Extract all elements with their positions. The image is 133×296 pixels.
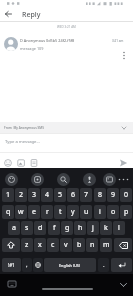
button[interactable]: y <box>67 205 79 219</box>
staticText: y <box>71 207 75 217</box>
staticText: 7 <box>84 190 89 200</box>
button[interactable] <box>33 258 43 272</box>
button[interactable] <box>103 173 116 186</box>
staticText: l <box>118 223 120 233</box>
staticText: i <box>99 207 101 217</box>
button[interactable]: 0 <box>120 188 132 202</box>
staticText: u <box>84 207 89 217</box>
button[interactable]: 7 <box>80 188 92 202</box>
staticText: c <box>51 240 55 250</box>
button[interactable]: w <box>15 205 27 219</box>
staticText: b <box>77 240 82 250</box>
button[interactable]: n <box>86 238 98 252</box>
staticText: 9 <box>111 190 116 200</box>
button[interactable] <box>111 258 132 272</box>
button[interactable] <box>2 238 20 252</box>
button[interactable]: z <box>21 238 33 252</box>
staticText: d <box>38 223 43 233</box>
button[interactable]: h <box>74 221 86 235</box>
button[interactable] <box>117 280 129 290</box>
button[interactable]: 5 <box>54 188 66 202</box>
button[interactable]: 3 <box>28 188 40 202</box>
staticText: 8 <box>98 190 103 200</box>
button[interactable] <box>2 9 14 19</box>
button[interactable]: r <box>41 205 53 219</box>
staticText: 0 <box>124 190 129 200</box>
button[interactable]: p <box>120 205 132 219</box>
button[interactable] <box>31 173 44 186</box>
staticText: z <box>25 240 29 250</box>
staticText: WED 3:21 AM <box>57 25 76 29</box>
staticText: f <box>53 223 56 233</box>
button[interactable]: f <box>48 221 60 235</box>
button[interactable]: c <box>47 238 59 252</box>
button[interactable]: k <box>100 221 112 235</box>
staticText: j <box>92 223 94 233</box>
button[interactable]: 2 <box>15 188 27 202</box>
staticText: 3:21 am <box>112 39 124 43</box>
staticText: 3 <box>32 190 37 200</box>
button[interactable]: Type a message... <box>5 139 40 145</box>
button[interactable]: b <box>73 238 85 252</box>
staticText: message 109 <box>20 46 44 51</box>
staticText: 5 <box>58 190 63 200</box>
staticText: h <box>78 223 83 233</box>
button[interactable]: s <box>21 221 33 235</box>
button[interactable]: 6 <box>67 188 79 202</box>
staticText: Reply <box>22 10 41 20</box>
button[interactable]: g <box>61 221 73 235</box>
staticText: a <box>12 223 16 233</box>
button[interactable]: 8 <box>94 188 106 202</box>
button[interactable]: !#1 <box>2 258 21 272</box>
button[interactable]: From My Anonymous SMS <box>0 122 133 133</box>
staticText: s <box>25 223 29 233</box>
staticText: v <box>64 240 68 250</box>
button[interactable]: 4 <box>41 188 53 202</box>
button[interactable]: English (US) <box>44 258 96 272</box>
staticText: 1 <box>6 190 11 200</box>
staticText: e <box>32 207 36 217</box>
button[interactable] <box>42 288 93 290</box>
staticText: o <box>111 207 116 217</box>
button[interactable] <box>57 173 70 186</box>
button[interactable] <box>6 279 18 289</box>
staticText: !#1 <box>8 262 15 268</box>
button[interactable]: e <box>28 205 40 219</box>
staticText: t <box>59 207 62 217</box>
staticText: r <box>46 207 49 217</box>
staticText: English (US) <box>59 263 81 268</box>
staticText: g <box>65 223 70 233</box>
staticText: , <box>26 261 28 269</box>
staticText: w <box>18 207 24 217</box>
button[interactable]: q <box>2 205 14 219</box>
button[interactable]: . <box>98 258 109 272</box>
button[interactable]: v <box>60 238 72 252</box>
staticText: From My Anonymous SMS <box>4 126 44 130</box>
staticText: 4 <box>45 190 50 200</box>
staticText: 2 <box>19 190 24 200</box>
button[interactable] <box>83 173 96 186</box>
button[interactable]: 9 <box>107 188 119 202</box>
staticText: 6 <box>71 190 76 200</box>
button[interactable]: u <box>80 205 92 219</box>
button[interactable] <box>5 173 18 186</box>
staticText: D Anonymous 0d5b5 24f2-f5f8 <box>20 38 75 43</box>
staticText: x <box>38 240 42 250</box>
button[interactable]: o <box>107 205 119 219</box>
button[interactable] <box>114 238 132 252</box>
staticText: n <box>90 240 95 250</box>
button[interactable]: t <box>54 205 66 219</box>
staticText: q <box>6 207 11 217</box>
staticText: k <box>104 223 108 233</box>
button[interactable]: d <box>34 221 46 235</box>
staticText: p <box>124 207 129 217</box>
button[interactable]: a <box>8 221 20 235</box>
staticText: . <box>103 261 105 269</box>
button[interactable]: , <box>22 258 32 272</box>
button[interactable]: j <box>87 221 99 235</box>
button[interactable]: x <box>34 238 46 252</box>
button[interactable]: 1 <box>2 188 14 202</box>
button[interactable]: i <box>94 205 106 219</box>
button[interactable]: m <box>100 238 112 252</box>
button[interactable]: l <box>113 221 125 235</box>
